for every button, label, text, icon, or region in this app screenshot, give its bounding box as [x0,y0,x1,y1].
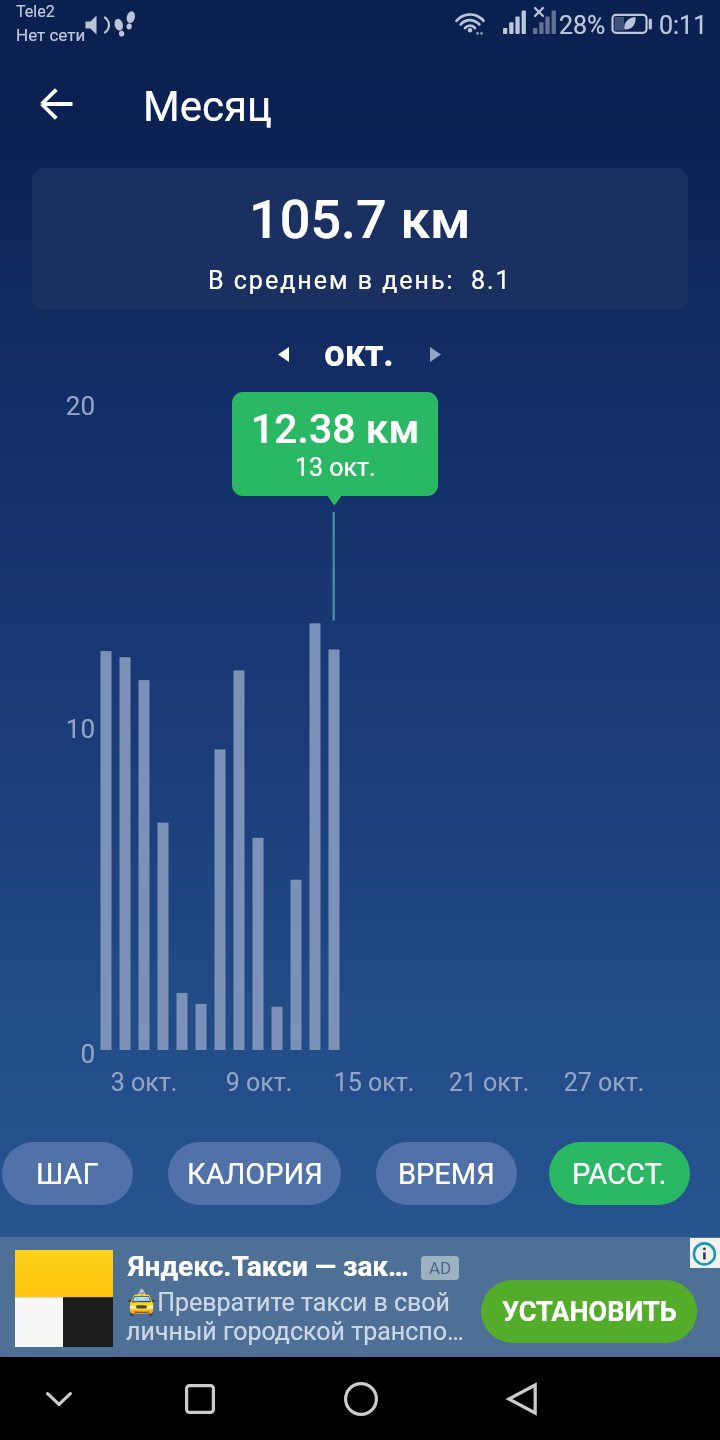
staticText: Нет сети [16,25,86,45]
staticText: 🚖Превратите такси в свой [126,1288,450,1317]
button[interactable]: Ad info [690,1238,720,1268]
staticText: 105.7 км [249,188,471,251]
staticText: КАЛОРИЯ [187,1157,323,1191]
staticText: 12.38 км [251,405,420,453]
button[interactable]: Recent apps [165,1357,235,1440]
staticText: 13 окт. [295,453,376,482]
button[interactable]: КАЛОРИЯ [168,1142,341,1205]
staticText: 20 [0,391,95,421]
button[interactable]: Hide keyboard [24,1357,94,1440]
button[interactable]: УСТАНОВИТЬ [481,1280,697,1343]
staticText: AD [429,1258,452,1278]
staticText: 9 окт. [199,1068,319,1097]
staticText: ШАГ [36,1157,99,1191]
staticText: 21 окт. [429,1068,549,1097]
button[interactable]: Яндекс.Такси — зак… [0,1237,720,1358]
staticText: 28% [559,11,606,40]
button[interactable]: 105.7 км [32,168,688,310]
staticText: Месяц [143,82,272,131]
button[interactable]: ШАГ [2,1142,133,1205]
staticText: 0 [0,1039,95,1069]
staticText: 3 окт. [84,1068,204,1097]
button[interactable]: Previous month [261,332,305,376]
staticText: 15 окт. [314,1068,434,1097]
staticText: 0:11 [659,11,708,40]
button[interactable]: Home [326,1357,396,1440]
button[interactable]: ВРЕМЯ [376,1142,517,1205]
button[interactable]: 12.38 км [232,392,438,496]
staticText: 10 [0,714,95,744]
staticText: Tele2 [16,2,55,21]
staticText: личный городской транспо… [126,1317,464,1346]
staticText: УСТАНОВИТЬ [502,1296,677,1328]
staticText: В среднем в день: 8.1 [208,266,512,295]
button[interactable]: Next month [413,332,457,376]
button[interactable]: Back [23,71,89,137]
button[interactable]: Back [487,1357,557,1440]
staticText: ВРЕМЯ [398,1157,495,1191]
button[interactable]: РАССТ. [549,1142,690,1205]
staticText: окт. [324,333,394,375]
staticText: РАССТ. [572,1157,667,1191]
staticText: 27 окт. [544,1068,664,1097]
staticText: Яндекс.Такси — зак… [128,1250,409,1283]
